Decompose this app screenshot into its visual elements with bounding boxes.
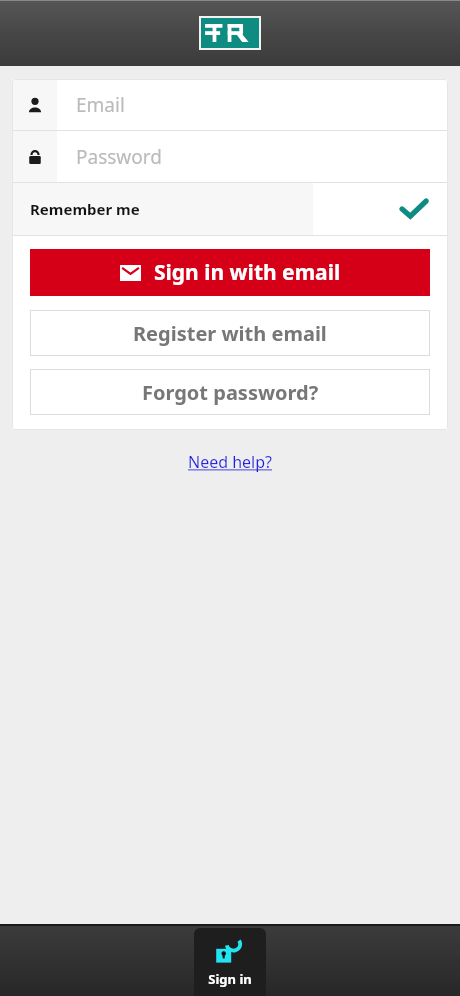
staticText: Forgot password? [142, 379, 319, 406]
button[interactable]: Remember me [12, 183, 448, 235]
button[interactable]: FR logo [201, 18, 259, 48]
button[interactable]: Email [12, 79, 448, 130]
staticText: Email [76, 92, 125, 118]
button[interactable]: Forgot password? [30, 369, 430, 415]
button[interactable]: Password [12, 131, 448, 182]
button[interactable]: Sign in [194, 928, 266, 996]
staticText: Sign in [208, 970, 252, 988]
staticText: Sign in with email [154, 258, 341, 287]
staticText: Need help? [188, 451, 273, 473]
staticText: Remember me [30, 199, 140, 219]
button[interactable]: Register with email [30, 310, 430, 356]
staticText: Register with email [133, 320, 327, 347]
staticText: Password [76, 144, 162, 170]
button[interactable]: Need help? [0, 451, 460, 473]
button[interactable]: Sign in with email [30, 249, 430, 296]
